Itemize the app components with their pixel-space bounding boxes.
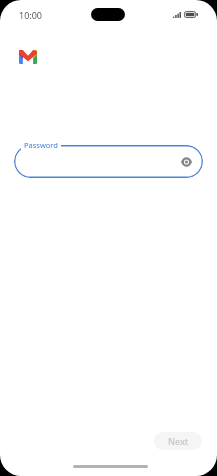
- button[interactable]: [14, 145, 203, 178]
- staticText: Password: [24, 140, 58, 150]
- other: Mobile signal: [173, 12, 181, 18]
- button[interactable]: Next: [154, 432, 202, 450]
- staticText: 10:00: [19, 9, 43, 21]
- other: Gmail: [19, 50, 37, 64]
- button[interactable]: Show password: [176, 152, 196, 172]
- other: Battery: [184, 11, 198, 18]
- staticText: Next: [168, 435, 189, 447]
